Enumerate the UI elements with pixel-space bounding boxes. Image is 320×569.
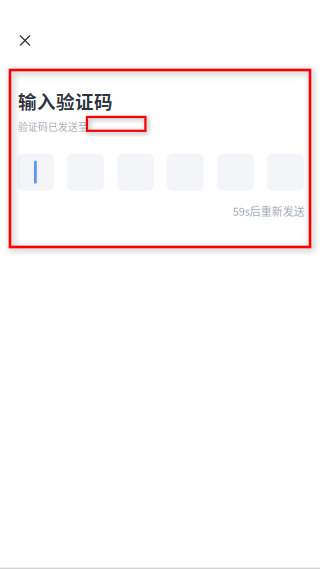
button[interactable]: Close — [9, 24, 41, 56]
staticText: 输入验证码 — [18, 88, 113, 114]
button[interactable]: 59s后重新发送 — [185, 203, 305, 218]
staticText: 59s后重新发送 — [233, 203, 305, 219]
staticText: 验证码已发送至 — [18, 119, 88, 134]
